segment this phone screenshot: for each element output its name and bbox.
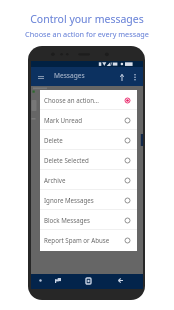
staticText: Choose an action... (44, 96, 100, 104)
button[interactable]: Ignore Messages (40, 190, 137, 210)
staticText: Report Spam or Abuse (44, 236, 110, 244)
staticText: Archive (44, 176, 66, 184)
staticText: Messages (54, 71, 85, 80)
button[interactable]: Choose an action... (40, 90, 137, 110)
button[interactable]: Block Messages (40, 210, 137, 230)
staticText: Ignore Messages (44, 196, 94, 204)
button[interactable]: Hide keyboard (35, 275, 46, 286)
staticText: Delete (44, 136, 63, 144)
button[interactable]: Delete (40, 130, 137, 150)
staticText: Control your messages (30, 12, 144, 26)
button[interactable]: Archive (40, 170, 137, 190)
staticText: Mark Unread (44, 116, 83, 124)
button[interactable]: Multi window (52, 275, 63, 286)
button[interactable]: Report Spam or Abuse (40, 230, 137, 250)
button[interactable]: Back (115, 275, 126, 286)
button[interactable]: More options (128, 71, 141, 84)
button[interactable]: Open navigation menu (35, 71, 47, 83)
staticText: Delete Selected (44, 156, 89, 164)
button[interactable]: Scroll to top (115, 71, 128, 84)
staticText: Choose an action for every message (25, 29, 149, 39)
staticText: Block Messages (44, 216, 91, 224)
button[interactable]: Mark Unread (40, 110, 137, 130)
button[interactable]: Delete Selected (40, 150, 137, 170)
button[interactable]: Home (83, 275, 94, 286)
